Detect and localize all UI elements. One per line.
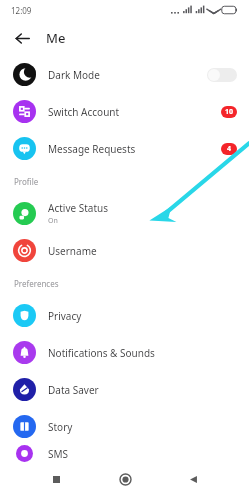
staticText: Active Status [48,201,108,215]
button[interactable]: Privacy [0,297,249,334]
button[interactable]: Message Requests [0,130,249,167]
button[interactable]: Data Saver [0,371,249,408]
button[interactable]: Active Status [0,195,249,232]
button[interactable]: Back [8,24,36,52]
button[interactable]: SMS [0,445,249,462]
button[interactable]: Recents [44,467,68,491]
button[interactable]: Switch Account [0,93,249,130]
button[interactable]: Notifications & Sounds [0,334,249,371]
button[interactable]: Dark Mode toggle [207,68,237,82]
button[interactable]: Story [0,408,249,445]
button[interactable]: Back [181,467,205,491]
staticText: Preferences [14,278,59,289]
staticText: Switch Account [48,105,120,119]
staticText: 12:09 [11,5,32,16]
staticText: Username [48,244,97,258]
staticText: SMS [48,447,69,461]
staticText: Story [48,420,73,434]
staticText: Me [46,29,66,47]
button[interactable]: Dark Mode [0,56,249,93]
staticText: Message Requests [48,142,136,156]
staticText: 4 [227,144,232,154]
button[interactable]: Username [0,232,249,269]
staticText: Profile [14,176,39,187]
staticText: Data Saver [48,383,99,397]
staticText: Notifications & Sounds [48,346,155,360]
button[interactable]: Home [113,467,137,491]
staticText: Dark Mode [48,68,100,82]
staticText: Privacy [48,309,82,323]
staticText: 10 [225,107,234,117]
staticText: On [48,216,58,226]
